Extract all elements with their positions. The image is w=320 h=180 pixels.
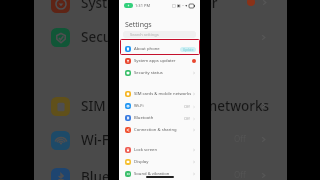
- button[interactable]: Display: [119, 156, 200, 168]
- staticText: Connection & sharing: [134, 127, 192, 133]
- button[interactable]: Lock screen: [119, 144, 200, 156]
- button[interactable]: Bluetooth: [119, 112, 200, 124]
- staticText: Search settings: [130, 32, 159, 37]
- staticText: Security status: [134, 70, 192, 76]
- staticText: Settings: [125, 20, 152, 30]
- staticText: Lock screen: [134, 147, 192, 153]
- staticText: SIM cards & mobile networks: [134, 91, 192, 97]
- staticText: Bluetooth: [81, 168, 145, 180]
- staticText: □ ▣ ⋅⋅ ▾: [172, 3, 188, 8]
- staticText: 1:31 PM: [135, 3, 151, 8]
- staticText: System apps updater: [134, 58, 192, 64]
- staticText: Wi-Fi: [134, 103, 184, 109]
- staticText: Update: [183, 48, 194, 52]
- staticText: SIM cards & mobile networks: [81, 97, 270, 115]
- staticText: Bluetooth: [134, 115, 184, 121]
- button[interactable]: Sound & vibration: [119, 168, 200, 180]
- staticText: Wi-Fi: [81, 131, 113, 149]
- staticText: About phone: [134, 46, 180, 52]
- button[interactable]: Search settings: [123, 31, 196, 38]
- button[interactable]: Security status: [119, 67, 200, 79]
- staticText: Display: [134, 159, 192, 165]
- button[interactable]: SIM cards & mobile networks: [119, 88, 200, 100]
- staticText: Security status: [81, 28, 177, 46]
- staticText: Off: [184, 104, 190, 109]
- button[interactable]: About phone: [119, 43, 200, 55]
- staticText: Sound & vibration: [134, 171, 192, 177]
- staticText: System apps updater: [81, 0, 218, 12]
- button[interactable]: Connection & sharing: [119, 124, 200, 136]
- staticText: Off: [184, 116, 190, 121]
- button[interactable]: System apps updater: [119, 55, 200, 67]
- button[interactable]: Wi-Fi: [119, 100, 200, 112]
